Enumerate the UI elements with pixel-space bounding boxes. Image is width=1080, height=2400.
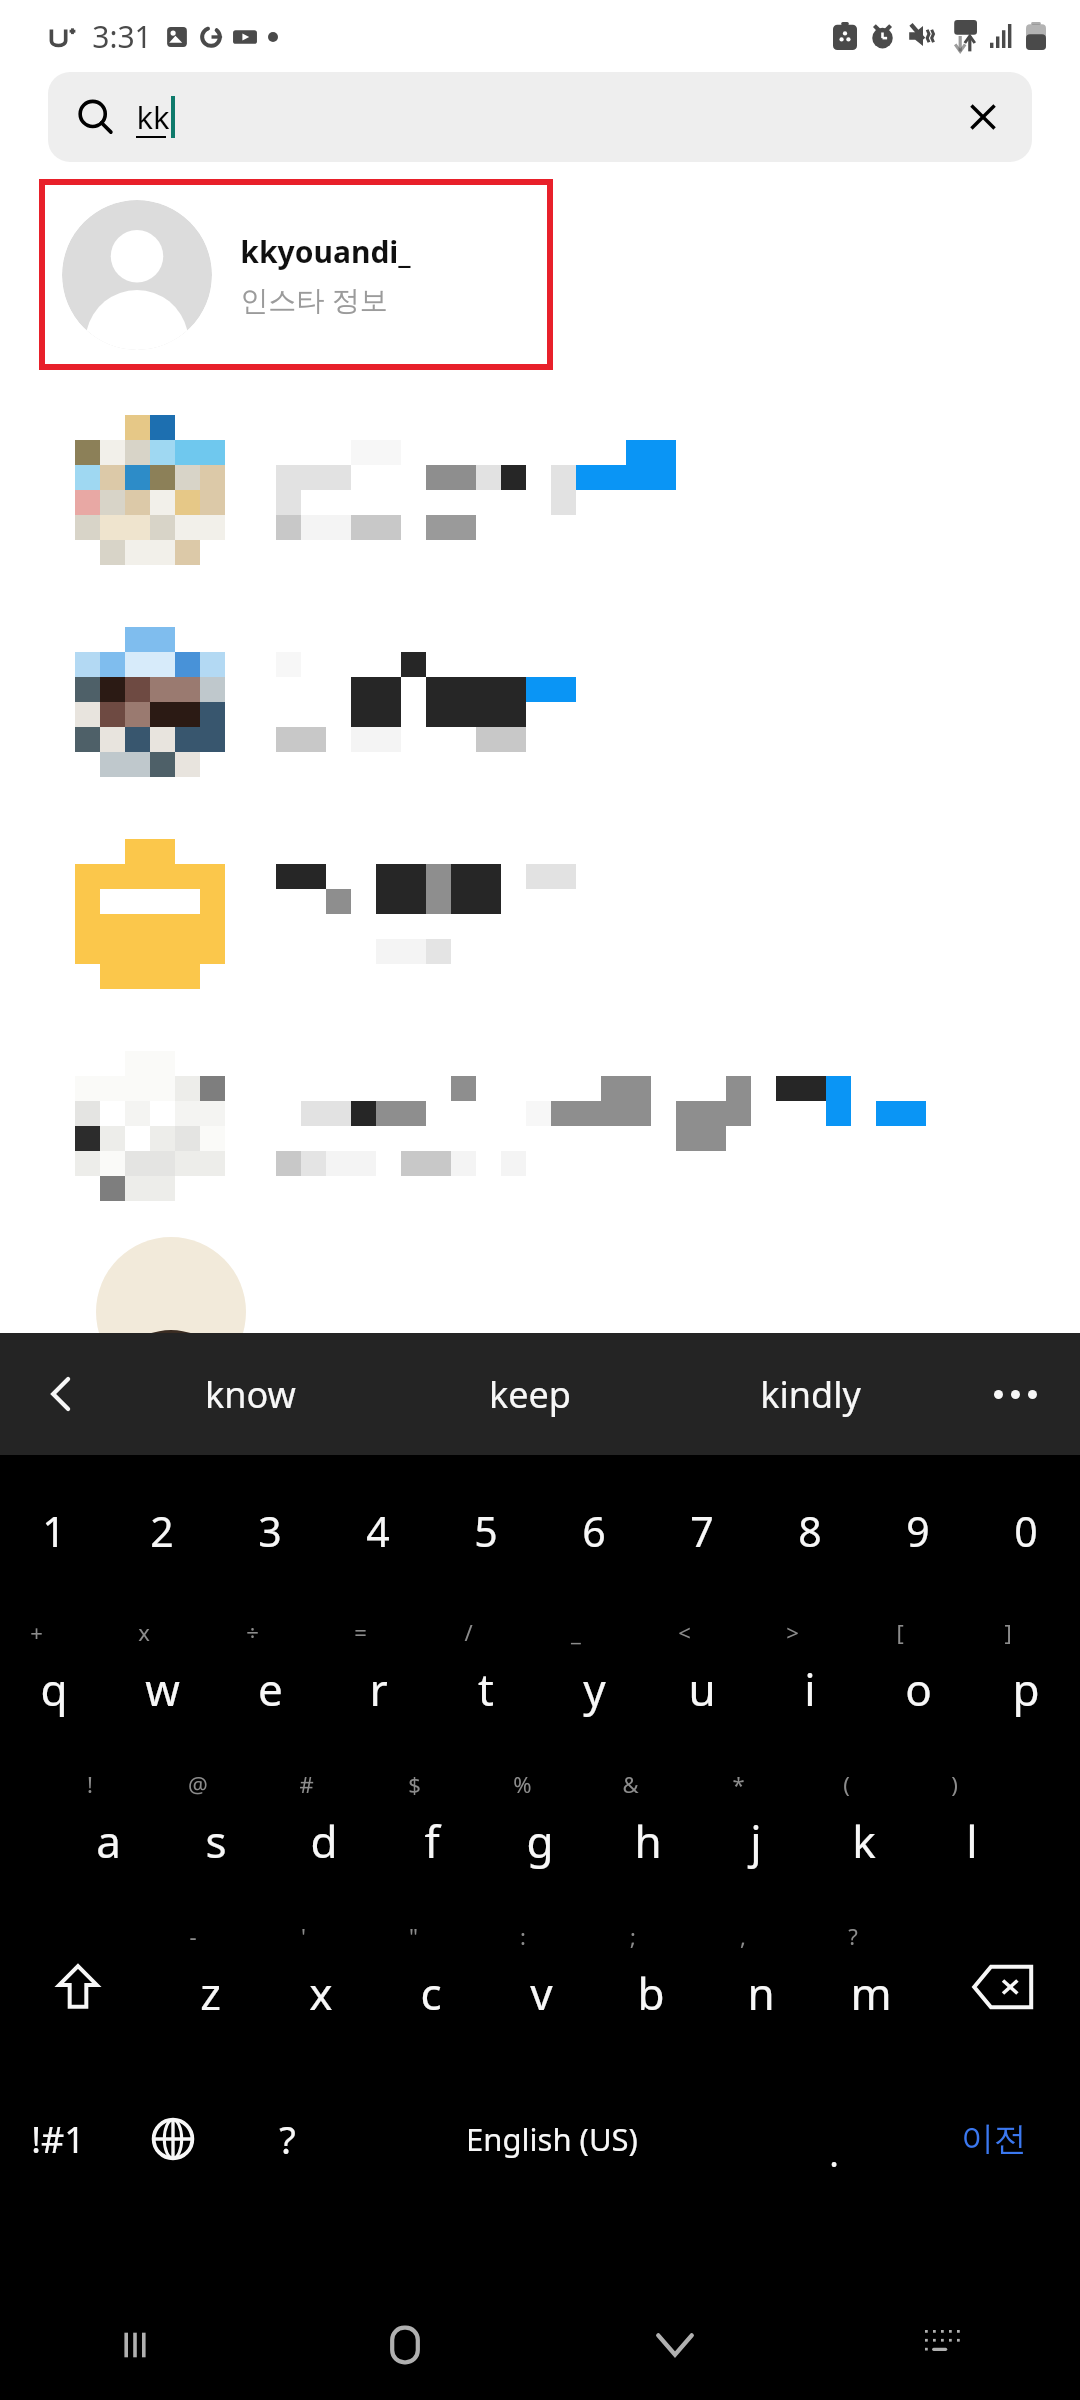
button[interactable]: Shift (0, 1911, 155, 2063)
button[interactable]: ? (230, 2063, 345, 2215)
staticText: k (852, 1811, 876, 1871)
button[interactable]: 5 (432, 1455, 540, 1607)
button[interactable]: z (155, 1911, 266, 2063)
button[interactable]: kk (48, 72, 1032, 162)
button[interactable]: j (702, 1759, 810, 1911)
button[interactable]: h (594, 1759, 702, 1911)
staticText: !#1 (31, 2115, 85, 2164)
staticText: ÷ (246, 1617, 259, 1647)
button[interactable]: 4 (324, 1455, 432, 1607)
button[interactable]: Change language (115, 2063, 230, 2215)
staticText: w (145, 1659, 180, 1719)
staticText: know (205, 1370, 296, 1419)
button[interactable]: 9 (864, 1455, 972, 1607)
button[interactable]: d (270, 1759, 378, 1911)
button[interactable]: m (816, 1911, 926, 2063)
staticText: = (354, 1617, 367, 1647)
button[interactable] (0, 814, 1080, 1026)
staticText: English (US) (466, 2118, 638, 2160)
staticText: 이전 (961, 2118, 1027, 2160)
button[interactable]: 6 (540, 1455, 648, 1607)
staticText: 3 (258, 1503, 282, 1559)
button[interactable]: 0 (972, 1455, 1080, 1607)
staticText: , (740, 1921, 746, 1951)
staticText: g (526, 1811, 554, 1871)
staticText: 1 (42, 1503, 66, 1559)
staticText: > (786, 1617, 799, 1647)
button[interactable]: p (972, 1607, 1080, 1759)
staticText: ! (87, 1769, 93, 1799)
staticText: < (678, 1617, 691, 1647)
staticText: @ (188, 1769, 208, 1799)
staticText: 4 (366, 1503, 390, 1559)
button[interactable]: know (110, 1333, 390, 1455)
staticText: ) (951, 1769, 958, 1799)
button[interactable]: . (759, 2063, 908, 2215)
button[interactable]: x (266, 1911, 376, 2063)
button[interactable]: keep (390, 1333, 670, 1455)
button[interactable]: kindly (670, 1333, 950, 1455)
button[interactable]: Clear search (956, 90, 1010, 144)
button[interactable]: Switch keyboard (810, 2290, 1080, 2400)
staticText: d (310, 1811, 338, 1871)
button[interactable]: English (US) (345, 2063, 759, 2215)
button[interactable] (0, 1026, 1080, 1238)
staticText: 6 (582, 1503, 606, 1559)
staticText: 9 (906, 1503, 930, 1559)
button[interactable]: k (810, 1759, 918, 1911)
button[interactable]: More options (950, 1333, 1080, 1455)
button[interactable] (0, 602, 1080, 814)
staticText: [ (896, 1617, 904, 1647)
button[interactable]: b (596, 1911, 706, 2063)
staticText: ' (301, 1921, 306, 1951)
staticText: p (1012, 1659, 1040, 1719)
button[interactable]: a (54, 1759, 162, 1911)
staticText: 7 (690, 1503, 714, 1559)
button[interactable]: s (162, 1759, 270, 1911)
staticText: i (804, 1659, 816, 1719)
button[interactable] (0, 390, 1080, 602)
button[interactable]: Recent apps (0, 2290, 270, 2400)
button[interactable]: t (432, 1607, 540, 1759)
button[interactable]: 7 (648, 1455, 756, 1607)
button[interactable]: y (540, 1607, 648, 1759)
button[interactable]: g (486, 1759, 594, 1911)
staticText: kindly (760, 1370, 861, 1419)
button[interactable]: w (108, 1607, 216, 1759)
staticText: s (205, 1811, 227, 1871)
staticText: ? (848, 1921, 858, 1951)
button[interactable]: o (864, 1607, 972, 1759)
staticText: ( (843, 1769, 850, 1799)
staticText: c (420, 1963, 442, 2023)
button[interactable]: e (216, 1607, 324, 1759)
button[interactable]: Backspace (926, 1911, 1080, 2063)
button[interactable]: 3 (216, 1455, 324, 1607)
button[interactable]: 8 (756, 1455, 864, 1607)
button[interactable]: v (486, 1911, 596, 2063)
button[interactable]: q (0, 1607, 108, 1759)
button[interactable]: Hide keyboard (540, 2290, 810, 2400)
button[interactable]: kkyouandi_ (42, 182, 550, 367)
staticText: 5 (474, 1503, 498, 1559)
button[interactable]: 이전 (908, 2063, 1080, 2215)
button[interactable]: i (756, 1607, 864, 1759)
button[interactable]: n (706, 1911, 816, 2063)
button[interactable]: 1 (0, 1455, 108, 1607)
staticText: ] (1004, 1617, 1012, 1647)
button[interactable]: !#1 (0, 2063, 115, 2215)
button[interactable]: r (324, 1607, 432, 1759)
staticText: l (966, 1811, 978, 1871)
staticText: z (200, 1963, 221, 2023)
staticText: a (96, 1811, 121, 1871)
staticText: t (478, 1659, 494, 1719)
button[interactable]: Previous suggestions (30, 1362, 94, 1426)
button[interactable]: u (648, 1607, 756, 1759)
button[interactable]: l (918, 1759, 1026, 1911)
staticText: _ (571, 1617, 581, 1647)
button[interactable]: Home (270, 2290, 540, 2400)
button[interactable]: c (376, 1911, 486, 2063)
button[interactable]: f (378, 1759, 486, 1911)
staticText: - (189, 1921, 197, 1951)
button[interactable]: 2 (108, 1455, 216, 1607)
staticText: f (424, 1811, 440, 1871)
